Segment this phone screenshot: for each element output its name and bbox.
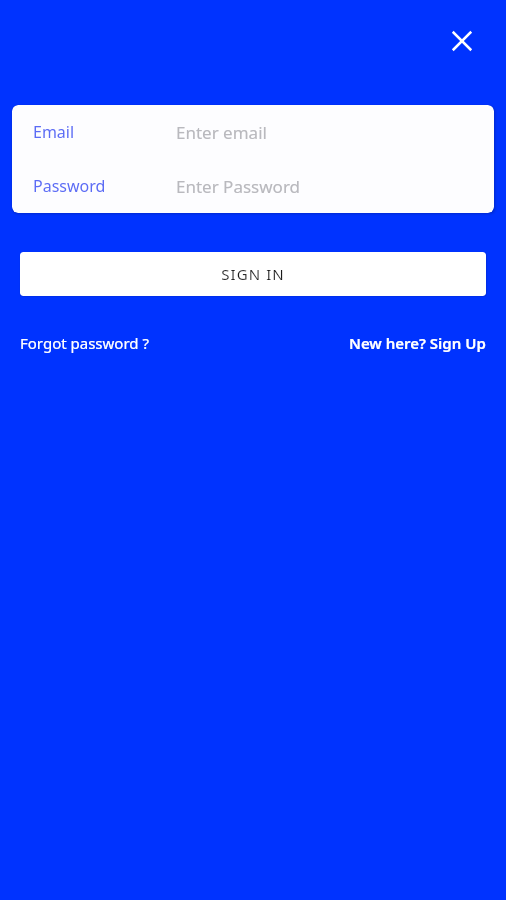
staticText: New here? Sign Up — [349, 333, 486, 353]
button[interactable]: Email — [12, 105, 494, 159]
button[interactable]: Close — [440, 19, 484, 63]
staticText: Forgot password ? — [20, 333, 149, 353]
staticText: Enter Password — [176, 175, 301, 198]
button[interactable]: New here? Sign Up — [349, 330, 486, 356]
staticText: SIGN IN — [221, 264, 285, 284]
button[interactable]: SIGN IN — [20, 252, 486, 296]
button[interactable]: Forgot password ? — [20, 330, 149, 356]
staticText: Enter email — [176, 121, 267, 144]
staticText: Password — [33, 175, 106, 197]
button[interactable]: Password — [12, 159, 494, 213]
staticText: Email — [33, 121, 75, 143]
